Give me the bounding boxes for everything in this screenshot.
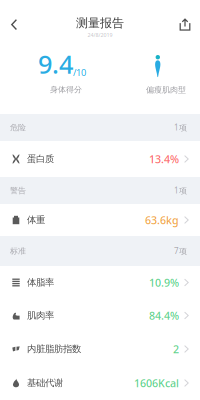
staticText: 基础代谢: [27, 377, 63, 389]
staticText: 肌肉率: [27, 310, 54, 321]
staticText: 内脏脂肪指数: [27, 343, 81, 355]
staticText: 10.9%: [149, 275, 179, 290]
staticText: 1项: [174, 185, 187, 196]
staticText: 7项: [174, 246, 187, 256]
staticText: 24/8/2019: [87, 31, 112, 38]
staticText: 9.4: [38, 47, 73, 81]
button[interactable]: 体重: [0, 204, 200, 236]
button[interactable]: 肌肉率: [0, 299, 200, 332]
staticText: 测量报告: [76, 16, 124, 30]
staticText: 偏瘦肌肉型: [146, 85, 186, 95]
staticText: 体脂率: [27, 277, 54, 288]
staticText: 13.4%: [149, 152, 179, 166]
staticText: 体重: [27, 214, 45, 226]
button[interactable]: 基础代谢: [0, 366, 200, 400]
staticText: 1606Kcal: [134, 376, 179, 390]
staticText: 63.6kg: [145, 213, 179, 227]
staticText: 危险: [10, 123, 26, 132]
staticText: 身体得分: [50, 85, 82, 94]
staticText: /10: [73, 66, 86, 79]
staticText: 2: [173, 342, 179, 356]
button[interactable]: 返回: [0, 15, 28, 35]
staticText: 警告: [10, 186, 26, 195]
staticText: 蛋白质: [27, 153, 54, 165]
button[interactable]: 分享: [170, 15, 200, 35]
button[interactable]: 蛋白质: [0, 141, 200, 177]
staticText: 84.4%: [149, 308, 179, 323]
button[interactable]: 体脂率: [0, 266, 200, 299]
staticText: 标准: [10, 246, 26, 256]
staticText: 1项: [174, 122, 187, 133]
button[interactable]: 内脏脂肪指数: [0, 332, 200, 366]
